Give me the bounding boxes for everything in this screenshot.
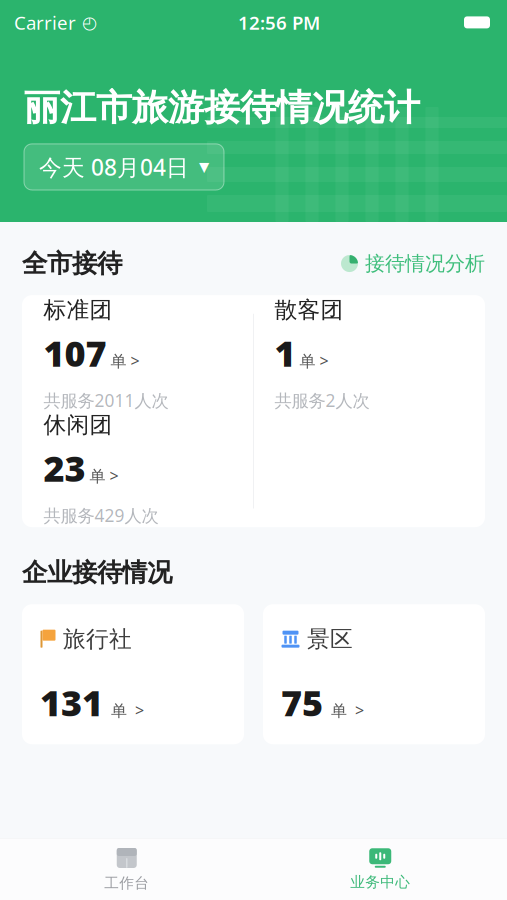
staticText: 丽江市旅游接待情况统计 [24,86,420,130]
staticText: 1 [274,329,295,377]
staticText: ◴ [82,13,97,32]
staticText: 单 [111,701,127,721]
button[interactable]: 今天 08月04日 [24,144,224,190]
staticText: 全市接待 [22,248,122,279]
staticText: 标准团 [43,296,112,324]
staticText: 旅行社 [63,625,132,653]
staticText: 共服务2人次 [274,389,369,412]
button[interactable]: 散客团 [253,296,484,411]
staticText: 23 [43,444,85,492]
staticText: 今天 08月04日 [39,152,189,182]
staticText: ▼ [199,159,209,174]
staticText: 12:56 PM [238,10,320,35]
staticText: 107 [43,329,106,377]
staticText: 景区 [307,625,353,653]
button[interactable]: 标准团 [22,296,253,411]
staticText: Carrier [14,10,76,35]
button[interactable]: 休闲团 [22,411,253,526]
button[interactable]: 旅行社 [22,604,244,744]
button[interactable]: 工作台 [47,840,207,898]
button[interactable]: 景区 [263,604,485,744]
button[interactable]: 业务中心 [300,840,460,898]
staticText: 单 [331,701,347,721]
staticText: 企业接待情况 [22,557,172,588]
staticText: 业务中心 [350,873,410,891]
staticText: > [319,350,328,371]
staticText: 散客团 [274,296,343,324]
staticText: 接待情况分析 [365,251,485,276]
staticText: 工作台 [104,874,149,892]
staticText: > [355,699,364,721]
staticText: > [130,350,139,371]
staticText: > [135,699,144,721]
button[interactable]: 接待情况分析 [341,251,485,276]
staticText: 共服务429人次 [43,504,158,527]
staticText: 休闲团 [43,411,112,439]
staticText: 单 [299,352,315,371]
staticText: 单 [89,467,105,486]
staticText: 75 [281,678,323,726]
staticText: 131 [40,678,103,726]
staticText: > [109,465,118,486]
staticText: 共服务2011人次 [43,389,168,412]
staticText: 单 [110,352,126,371]
